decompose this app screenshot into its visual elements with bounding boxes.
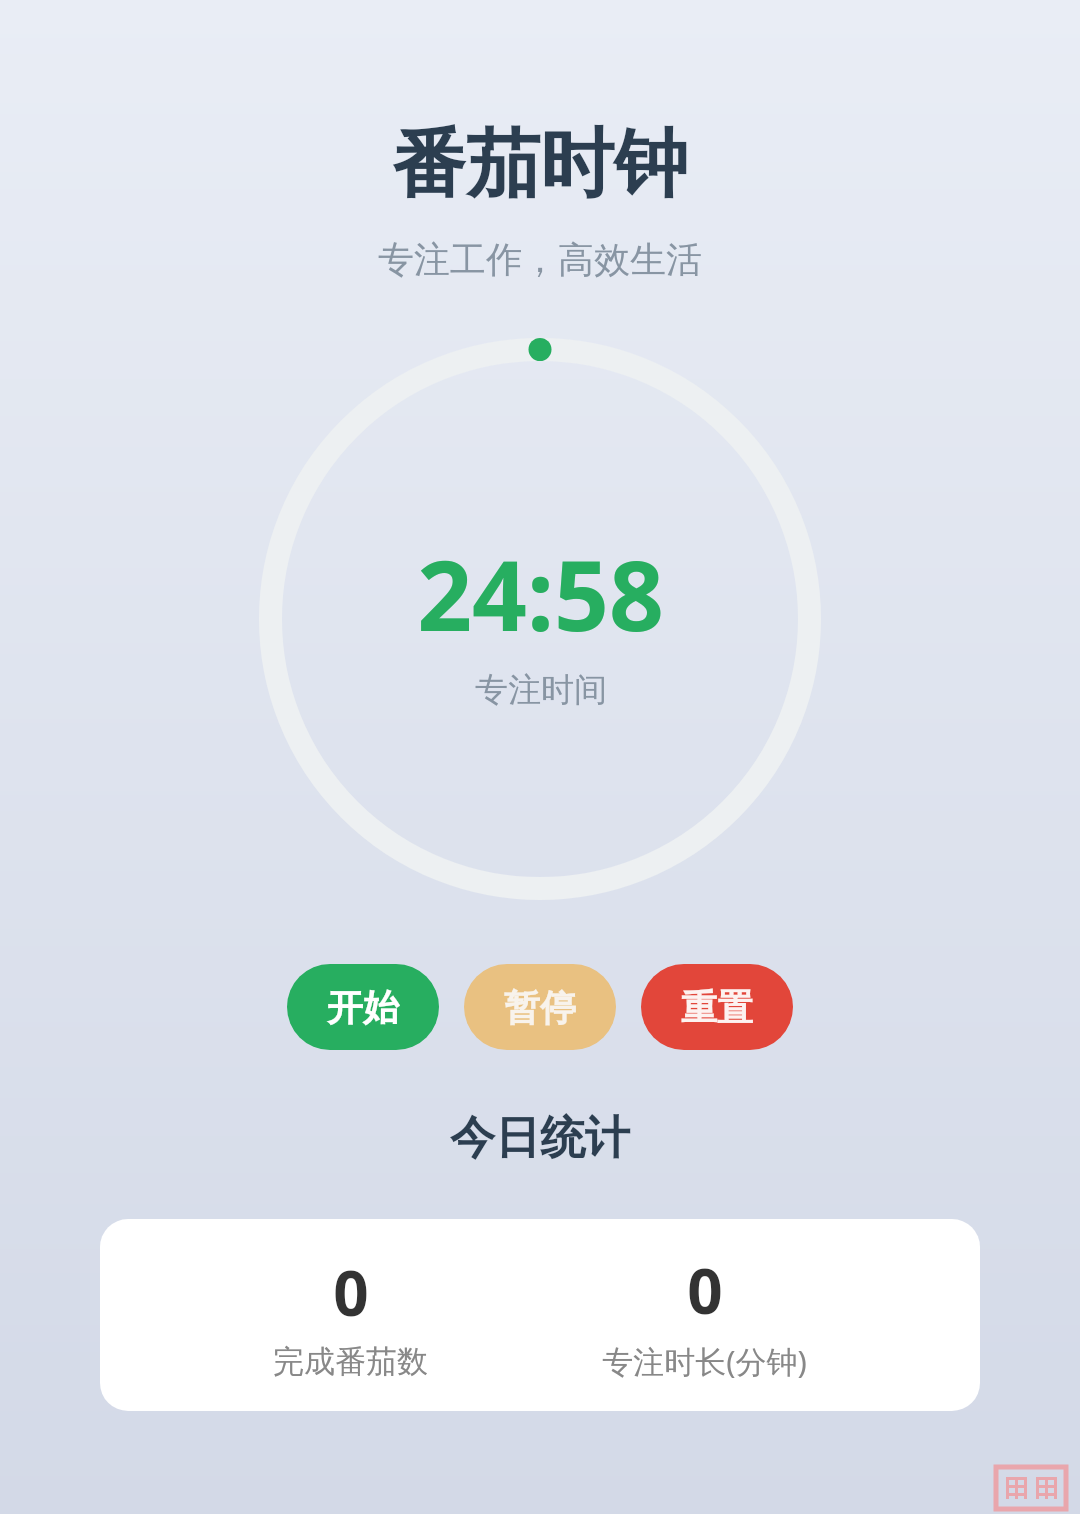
staticText: 24:58: [417, 528, 664, 659]
staticText: 暂停: [504, 985, 576, 1030]
staticText: 专注时间: [475, 669, 607, 711]
button[interactable]: 重置: [641, 964, 793, 1050]
staticText: 重置: [681, 985, 753, 1030]
staticText: 0: [687, 1248, 723, 1332]
staticText: 番茄时钟: [392, 118, 688, 211]
staticText: 开始: [327, 985, 399, 1030]
button[interactable]: 0: [602, 1248, 807, 1382]
staticText: 专注工作，高效生活: [378, 237, 702, 282]
button[interactable]: 0: [100, 1219, 980, 1411]
button[interactable]: 开始: [287, 964, 439, 1050]
staticText: 完成番茄数: [273, 1342, 428, 1381]
staticText: 今日统计: [450, 1110, 630, 1167]
button[interactable]: 0: [273, 1250, 428, 1381]
button[interactable]: 暂停: [464, 964, 616, 1050]
staticText: 0: [333, 1250, 369, 1334]
staticText: 专注时长(分钟): [602, 1340, 807, 1382]
